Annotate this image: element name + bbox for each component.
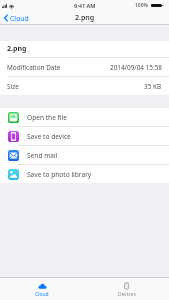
- button[interactable]: Send mail: [0, 146, 169, 164]
- button[interactable]: Cloud: [0, 278, 84, 300]
- staticText: Send mail: [27, 151, 58, 160]
- button[interactable]: Save to photo library: [0, 165, 169, 183]
- staticText: Save to device: [27, 132, 71, 141]
- staticText: Open the file: [27, 113, 67, 122]
- staticText: 2.png: [7, 44, 27, 54]
- button[interactable]: Back to Cloud: [4, 11, 29, 25]
- staticText: 9:41 AM: [74, 2, 96, 10]
- staticText: 2014/09/04 15:58: [110, 63, 162, 72]
- staticText: 100%: [135, 2, 148, 9]
- staticText: Size: [7, 82, 19, 91]
- staticText: Save to photo library: [27, 170, 92, 179]
- button[interactable]: Devices: [84, 278, 169, 300]
- button[interactable]: Open the file: [0, 108, 169, 126]
- staticText: 35 KB: [144, 82, 162, 91]
- staticText: Devices: [118, 291, 136, 298]
- staticText: Cloud: [35, 291, 49, 298]
- staticText: Modification Date: [7, 63, 61, 72]
- button[interactable]: Save to device: [0, 127, 169, 145]
- staticText: Cloud: [10, 14, 29, 23]
- staticText: 2.png: [75, 13, 95, 23]
